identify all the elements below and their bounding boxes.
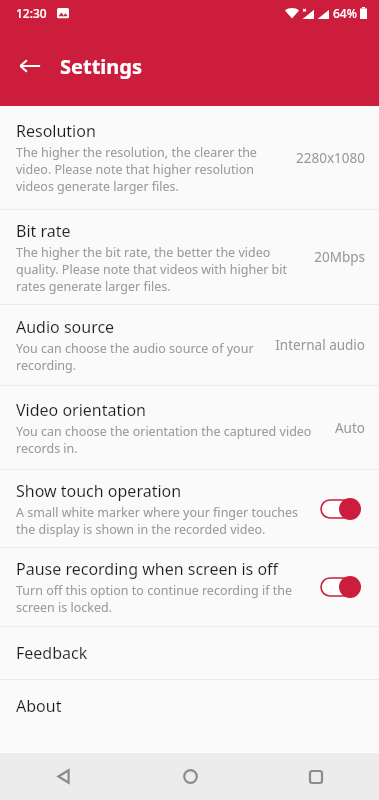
button[interactable]: Video orientation	[0, 386, 379, 469]
staticText: The higher the bit rate, the better the …	[16, 244, 302, 295]
button[interactable]: Back	[0, 753, 127, 800]
button[interactable]: About	[0, 680, 379, 732]
button[interactable]: Audio source	[0, 305, 379, 385]
staticText: You can choose the orientation the captu…	[16, 423, 322, 457]
staticText: Bit rate	[16, 220, 71, 242]
button[interactable]: Feedback	[0, 627, 379, 679]
staticText: 64%	[333, 5, 357, 21]
staticText: Pause recording when screen is off	[16, 558, 279, 580]
button[interactable]: Recent apps	[253, 753, 379, 800]
button[interactable]: Resolution	[0, 106, 379, 209]
staticText: Audio source	[16, 316, 115, 338]
staticText: About	[16, 695, 62, 717]
staticText: Auto	[334, 419, 365, 437]
staticText: 2280x1080	[296, 149, 365, 167]
staticText: 12:30	[16, 5, 47, 21]
staticText: Feedback	[16, 642, 88, 664]
staticText: A small white marker where your finger t…	[16, 504, 305, 538]
staticText: Turn off this option to continue recordi…	[16, 582, 305, 616]
button[interactable]: Home	[127, 753, 253, 800]
button[interactable]: Toggle	[317, 494, 365, 524]
staticText: Settings	[60, 53, 142, 80]
staticText: Resolution	[16, 120, 96, 142]
button[interactable]: Show touch operation	[0, 470, 379, 547]
staticText: 20Mbps	[314, 248, 365, 266]
staticText: Internal audio	[275, 336, 365, 354]
button[interactable]: Back	[8, 44, 52, 88]
staticText: Video orientation	[16, 399, 146, 421]
button[interactable]: Pause recording when screen is off	[0, 548, 379, 626]
button[interactable]: Toggle	[317, 572, 365, 602]
staticText: Show touch operation	[16, 480, 182, 502]
staticText: The higher the resolution, the clearer t…	[16, 144, 284, 195]
staticText: You can choose the audio source of your …	[16, 340, 263, 374]
button[interactable]: Bit rate	[0, 210, 379, 304]
